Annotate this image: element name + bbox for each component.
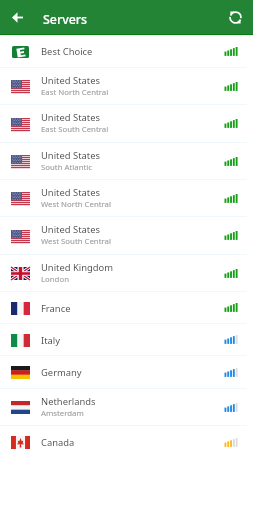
staticText: United States	[41, 186, 100, 199]
staticText: London	[41, 274, 69, 285]
staticText: France	[41, 302, 71, 315]
staticText: Canada	[41, 436, 75, 449]
button[interactable]: Refresh	[224, 6, 246, 28]
button[interactable]: United States	[0, 68, 253, 105]
staticText: Italy	[41, 334, 61, 347]
button[interactable]: United Kingdom	[0, 255, 253, 292]
staticText: United States	[41, 111, 100, 124]
staticText: Germany	[41, 366, 82, 379]
staticText: United Kingdom	[41, 261, 114, 274]
button[interactable]: Netherlands	[0, 389, 253, 426]
staticText: East South Central	[41, 124, 109, 135]
staticText: South Atlantic	[41, 162, 93, 173]
staticText: United States	[41, 74, 100, 87]
staticText: Amsterdam	[41, 408, 84, 419]
button[interactable]: Back	[6, 6, 28, 28]
staticText: West South Central	[41, 236, 111, 247]
staticText: United States	[41, 223, 100, 236]
button[interactable]: France	[0, 292, 253, 324]
button[interactable]: Best Choice	[0, 35, 253, 68]
staticText: Servers	[43, 11, 88, 28]
button[interactable]: Germany	[0, 356, 253, 389]
staticText: United States	[41, 149, 100, 162]
staticText: West North Central	[41, 199, 111, 210]
staticText: Netherlands	[41, 395, 96, 408]
button[interactable]: United States	[0, 180, 253, 217]
button[interactable]: United States	[0, 217, 253, 255]
staticText: Best Choice	[41, 45, 93, 58]
button[interactable]: Canada	[0, 426, 253, 459]
button[interactable]: United States	[0, 105, 253, 143]
staticText: East North Central	[41, 87, 109, 98]
button[interactable]: Italy	[0, 324, 253, 356]
button[interactable]: United States	[0, 143, 253, 180]
